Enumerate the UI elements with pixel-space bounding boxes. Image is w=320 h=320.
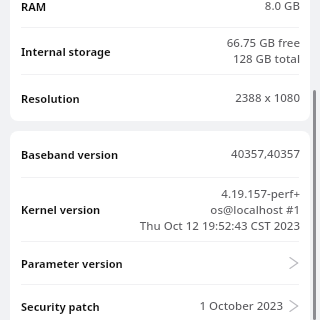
staticText: 1 October 2023 [199, 298, 283, 314]
other: Parameter version [283, 256, 300, 270]
staticText: Kernel version [21, 202, 101, 217]
button[interactable]: Security patch [10, 285, 310, 320]
button[interactable]: Parameter version [10, 242, 310, 284]
staticText: Security patch [21, 299, 100, 314]
staticText: 66.75 GB free [226, 35, 300, 51]
staticText: Internal storage [21, 44, 111, 59]
staticText: RAM [21, 0, 47, 14]
staticText: os@localhost #1 [210, 202, 300, 218]
staticText: 8.0 GB [264, 0, 300, 14]
staticText: Parameter version [21, 256, 123, 271]
button[interactable]: Resolution [10, 75, 310, 121]
staticText: 4.19.157-perf+ [221, 186, 300, 202]
staticText: 128 GB total [232, 51, 300, 67]
button[interactable]: Baseband version [10, 131, 310, 177]
button[interactable]: Internal storage [10, 28, 310, 74]
button[interactable]: RAM [10, 0, 310, 27]
staticText: 2388 x 1080 [235, 90, 300, 106]
other: Security patch [283, 299, 300, 313]
staticText: 40357,40357 [231, 146, 300, 162]
staticText: Baseband version [21, 147, 119, 162]
button[interactable]: Kernel version [10, 178, 310, 241]
staticText: Thu Oct 12 19:52:43 CST 2023 [139, 218, 300, 234]
staticText: Resolution [21, 91, 80, 106]
